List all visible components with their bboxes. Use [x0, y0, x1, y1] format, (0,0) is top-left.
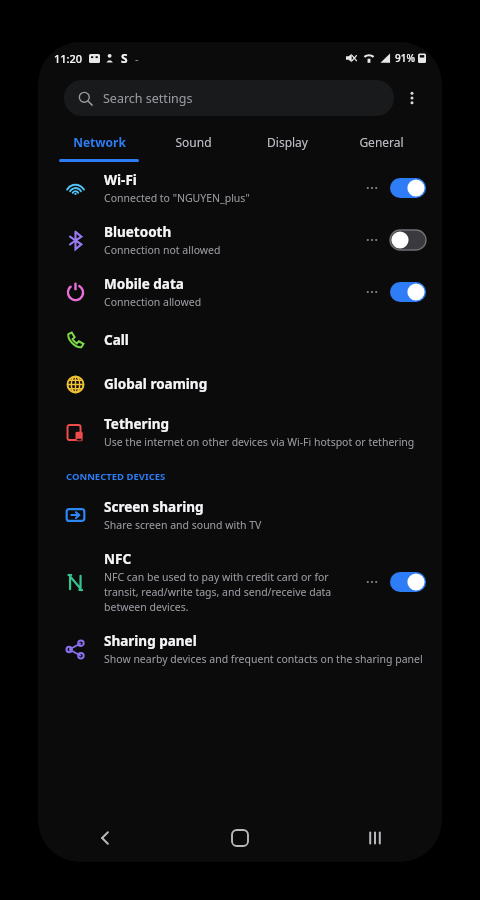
button[interactable]: Home — [172, 814, 307, 862]
button[interactable]: Toggle on — [390, 178, 426, 198]
staticText: Call — [104, 331, 129, 349]
staticText: Global roaming — [104, 375, 208, 393]
staticText: Sharing panel — [104, 632, 197, 650]
button[interactable]: Mobile data — [38, 266, 442, 318]
button[interactable]: Call — [38, 318, 442, 362]
button[interactable]: Wi-Fi — [38, 162, 442, 214]
staticText: CONNECTED DEVICES — [66, 470, 166, 483]
button[interactable]: Toggle off — [390, 230, 426, 250]
staticText: Share screen and sound with TV — [104, 518, 262, 532]
staticText: Show nearby devices and frequent contact… — [104, 652, 423, 666]
staticText: Mobile data — [104, 275, 184, 293]
button[interactable]: Bluetooth — [38, 214, 442, 266]
staticText: Wi-Fi — [104, 171, 137, 189]
staticText: NFC can be used to pay with credit card … — [104, 570, 358, 614]
staticText: Network — [73, 134, 126, 150]
button[interactable]: Global roaming — [38, 362, 442, 406]
button[interactable]: General — [334, 122, 428, 162]
staticText: Connected to "NGUYEN_plus" — [104, 191, 250, 205]
staticText: Display — [267, 134, 308, 150]
button[interactable]: Toggle on — [390, 572, 426, 592]
button[interactable]: Display — [240, 122, 334, 162]
staticText: 11:20 — [54, 51, 83, 66]
staticText: NFC — [104, 550, 132, 568]
staticText: - — [135, 51, 139, 66]
button[interactable]: Toggle on — [390, 282, 426, 302]
staticText: Tethering — [104, 415, 169, 433]
button[interactable]: Screen sharing — [38, 489, 442, 541]
button[interactable]: Search settings — [64, 80, 394, 116]
button[interactable]: More options — [394, 80, 430, 116]
button[interactable]: Sound — [146, 122, 240, 162]
staticText: Sound — [175, 134, 212, 150]
button[interactable]: Recents — [307, 814, 442, 862]
staticText: Connection allowed — [104, 295, 202, 309]
staticText: 91% — [395, 51, 415, 65]
staticText: S — [121, 50, 128, 66]
button[interactable]: Network — [52, 122, 146, 162]
staticText: Use the internet on other devices via Wi… — [104, 435, 415, 449]
staticText: Connection not allowed — [104, 243, 221, 257]
button[interactable]: Back — [38, 814, 172, 862]
button[interactable]: Sharing panel — [38, 623, 442, 675]
button[interactable]: Tethering — [38, 406, 442, 458]
staticText: General — [359, 134, 404, 150]
staticText: Screen sharing — [104, 498, 204, 516]
staticText: Bluetooth — [104, 223, 172, 241]
staticText: Search settings — [103, 90, 193, 107]
button[interactable]: NFC — [38, 541, 442, 623]
